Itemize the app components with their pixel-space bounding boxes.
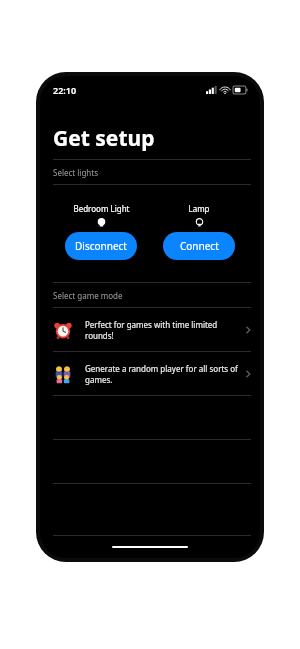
staticText: Select game mode	[53, 290, 123, 301]
other: Open	[245, 325, 251, 335]
button[interactable]: Generate a random player for all sorts o…	[40, 352, 260, 395]
staticText: Lamp	[188, 203, 210, 214]
other: Open	[245, 369, 251, 379]
staticText: Connect	[180, 239, 219, 253]
staticText: Select lights	[53, 167, 98, 178]
staticText: Disconnect	[75, 239, 127, 253]
staticText: Generate a random player for all sorts o…	[85, 363, 239, 385]
staticText: Perfect for games with time limited roun…	[85, 319, 239, 341]
button[interactable]: Connect	[163, 232, 235, 260]
staticText: Get setup	[53, 124, 155, 153]
button[interactable]: Disconnect	[65, 232, 137, 260]
button[interactable]: Perfect for games with time limited roun…	[40, 308, 260, 351]
staticText: 22:10	[53, 84, 77, 96]
staticText: Bedroom Light	[73, 203, 130, 214]
